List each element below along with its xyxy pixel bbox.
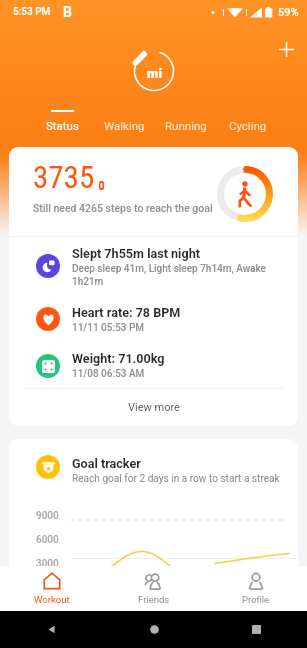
button[interactable]: Walking: [93, 106, 155, 138]
button[interactable]: Back: [0, 611, 103, 648]
staticText: Heart rate: 78 BPM: [72, 305, 181, 320]
staticText: Profile: [242, 594, 270, 605]
staticText: 6000: [36, 534, 59, 546]
button[interactable]: Friends: [103, 566, 205, 611]
staticText: Slept 7h55m last night: [72, 246, 200, 261]
button[interactable]: Workout: [0, 566, 103, 611]
staticText: Walking: [104, 119, 145, 132]
button[interactable]: Running: [155, 106, 217, 138]
staticText: Status: [46, 119, 79, 132]
staticText: Still need 4265 steps to reach the goal: [33, 202, 213, 214]
staticText: Cycling: [229, 119, 267, 132]
staticText: Reach goal for 2 days in a row to start …: [72, 473, 280, 485]
staticText: Weight: 71.00kg: [72, 351, 165, 366]
staticText: 59%: [278, 6, 299, 19]
button[interactable]: Recent apps: [205, 611, 307, 648]
staticText: 11/08 06:53 AM: [72, 368, 145, 380]
button[interactable]: Cycling: [217, 106, 279, 138]
staticText: 3000: [36, 558, 59, 570]
staticText: 11/11 05:53 PM: [72, 322, 145, 334]
button[interactable]: Slept 7h55m last night: [36, 237, 270, 295]
staticText: B: [63, 4, 72, 20]
button[interactable]: Home: [103, 611, 205, 648]
staticText: View more: [128, 401, 180, 414]
staticText: mi: [147, 66, 163, 81]
button[interactable]: Device: [127, 44, 181, 98]
staticText: Workout: [34, 594, 70, 605]
staticText: Running: [165, 119, 207, 132]
button[interactable]: Weight: 71.00kg: [36, 343, 270, 388]
staticText: 3735: [33, 159, 95, 195]
button[interactable]: Profile: [205, 566, 307, 611]
staticText: 9000: [36, 510, 59, 522]
staticText: Friends: [138, 594, 170, 605]
staticText: 5:53 PM: [13, 6, 51, 18]
button[interactable]: Add device: [273, 36, 299, 62]
button[interactable]: Status: [31, 106, 93, 138]
staticText: Goal tracker: [72, 456, 141, 471]
button[interactable]: View more: [9, 389, 298, 426]
button[interactable]: Heart rate: 78 BPM: [36, 295, 270, 343]
staticText: Deep sleep 41m, Light sleep 7h14m, Awake…: [72, 263, 270, 287]
